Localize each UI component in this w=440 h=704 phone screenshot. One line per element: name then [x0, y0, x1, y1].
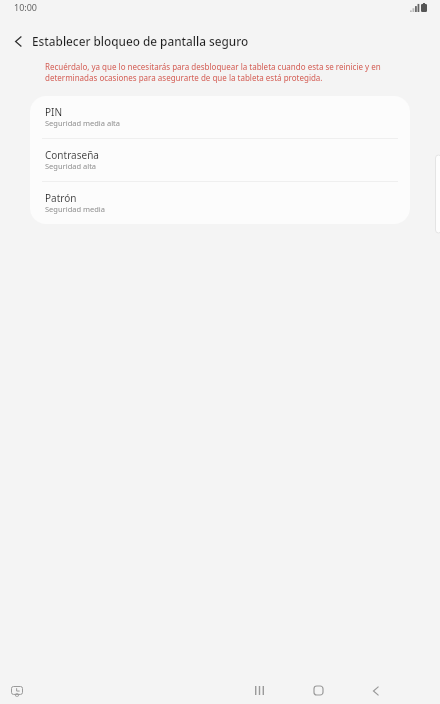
staticText: Seguridad media: [45, 204, 106, 214]
staticText: Establecer bloqueo de pantalla seguro: [32, 33, 249, 49]
staticText: PIN: [45, 105, 63, 119]
button[interactable]: Navigate up: [0, 26, 36, 56]
staticText: Recuérdalo, ya que lo necesitarás para d…: [45, 61, 381, 84]
staticText: 10:00: [14, 1, 38, 13]
button[interactable]: Back: [354, 677, 398, 704]
staticText: Seguridad alta: [45, 161, 97, 171]
button[interactable]: Home: [296, 677, 340, 704]
button[interactable]: PIN: [30, 96, 410, 139]
staticText: Patrón: [45, 191, 77, 205]
button[interactable]: Hide navigation bar: [6, 680, 28, 702]
button[interactable]: Patrón: [30, 182, 410, 224]
button[interactable]: Contraseña: [30, 139, 410, 182]
staticText: Contraseña: [45, 148, 99, 162]
staticText: Seguridad media alta: [45, 118, 121, 128]
button[interactable]: Recents: [237, 677, 281, 704]
